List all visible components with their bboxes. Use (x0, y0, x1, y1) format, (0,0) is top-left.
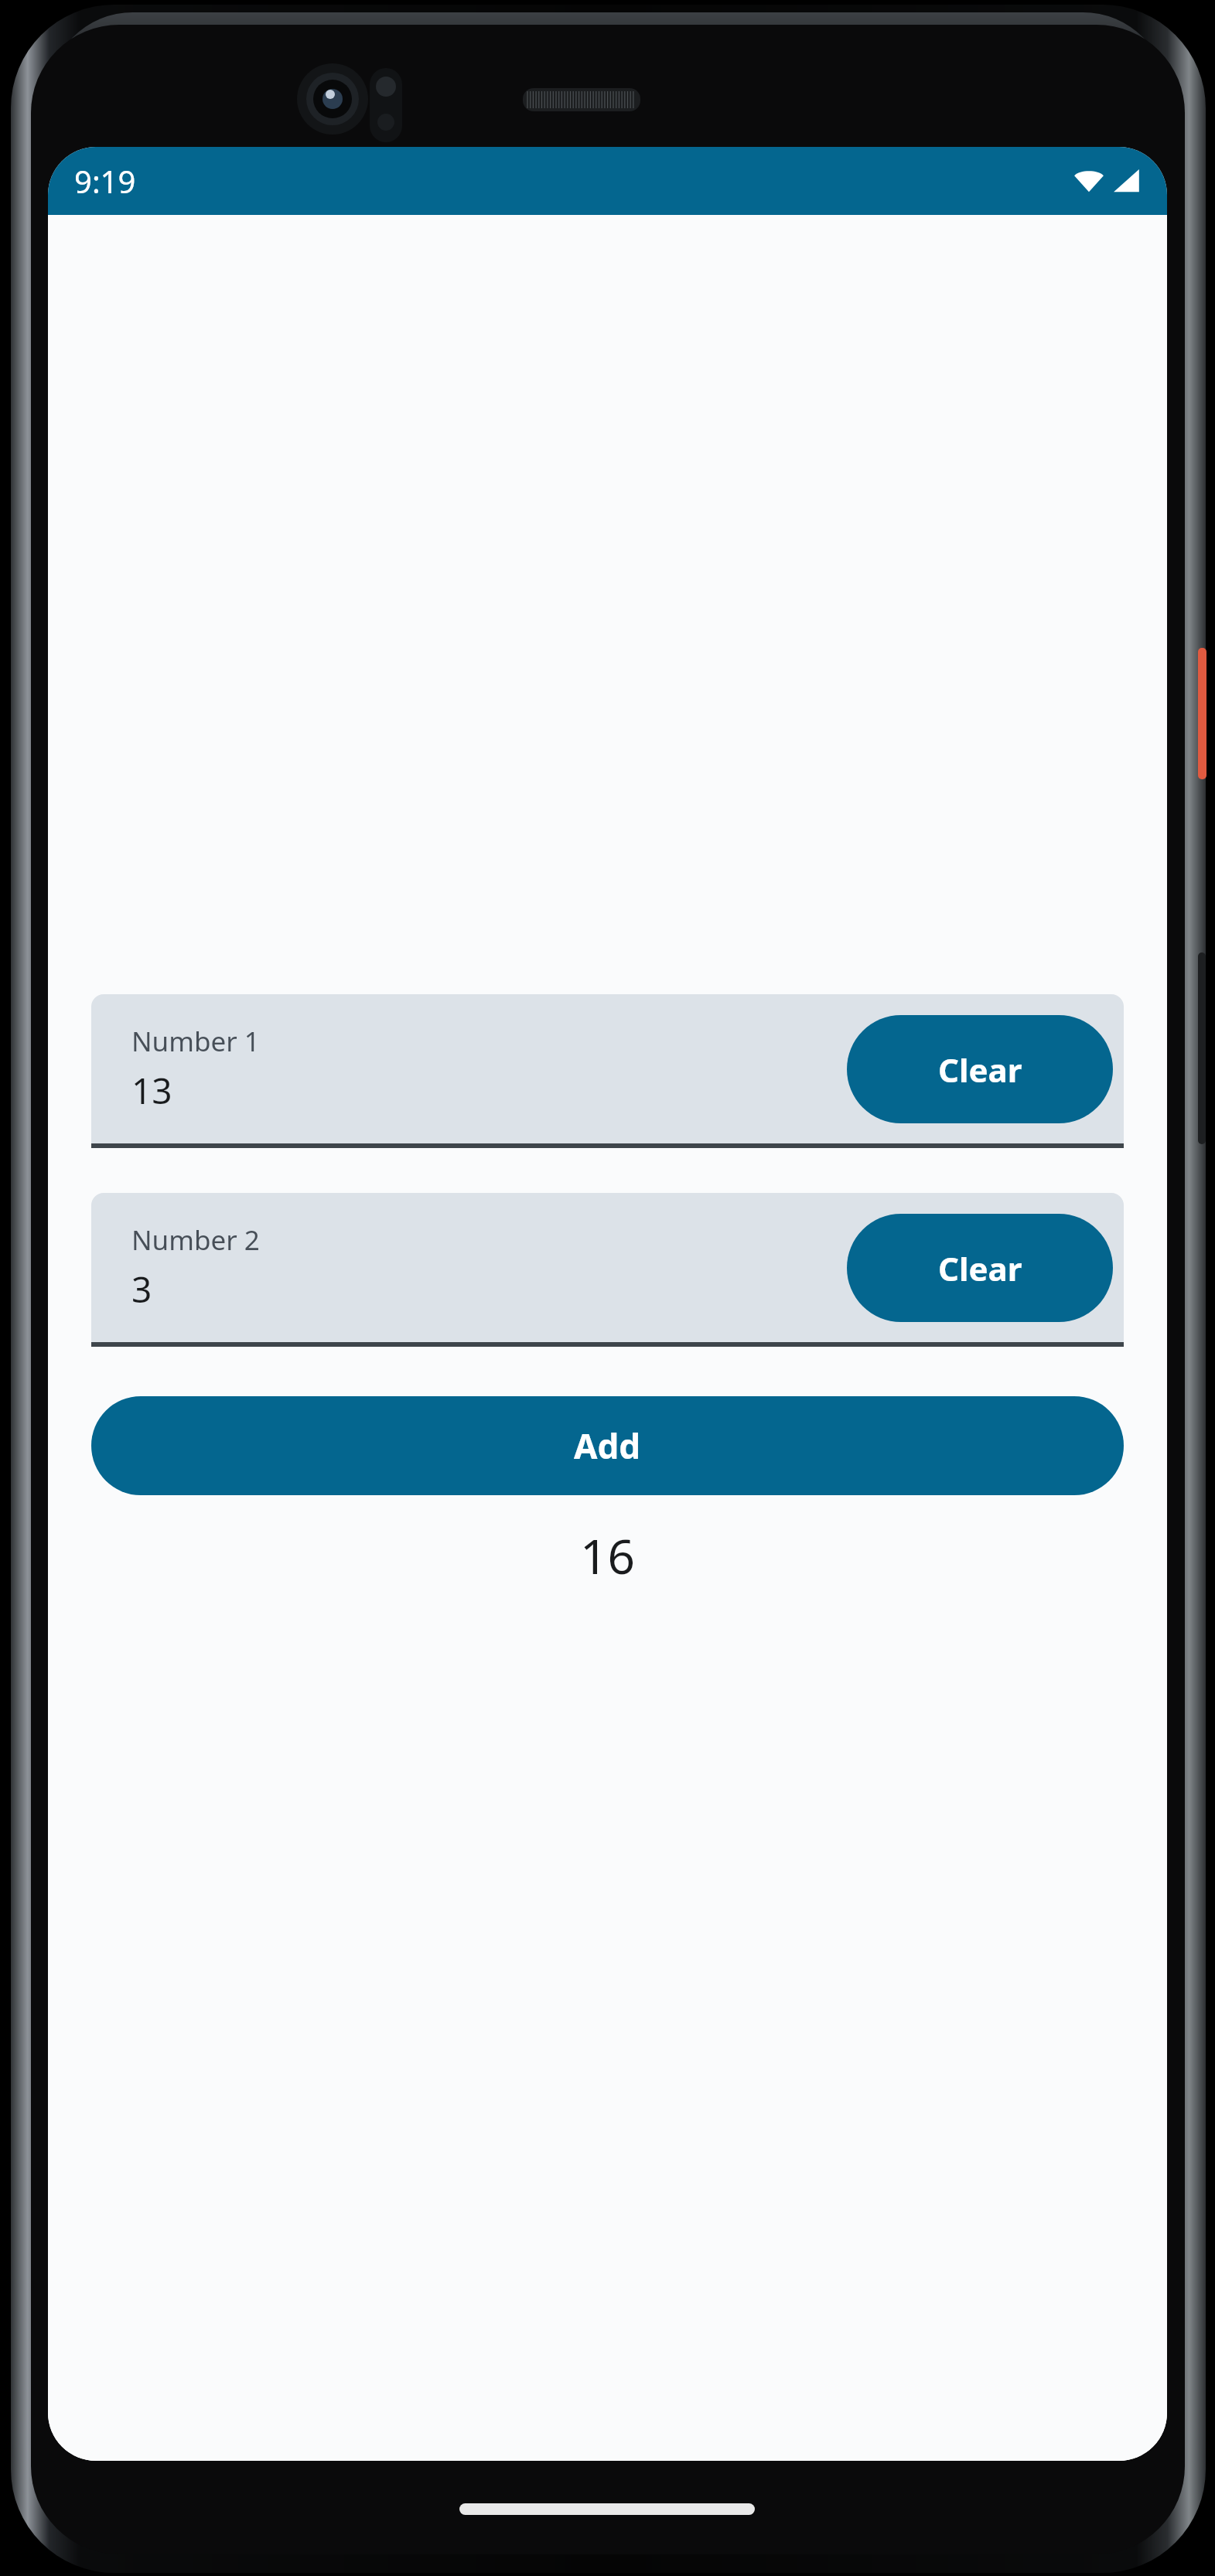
staticText: Clear (938, 1048, 1022, 1092)
staticText: Add (574, 1423, 641, 1469)
staticText: Number 1 (131, 1023, 260, 1060)
button[interactable]: Number 2 (91, 1193, 1124, 1342)
staticText: 16 (48, 1523, 1167, 1588)
staticText: 13 (131, 1066, 172, 1115)
button[interactable]: Add (91, 1396, 1124, 1495)
staticText: 9:19 (74, 160, 136, 202)
staticText: Number 2 (131, 1222, 260, 1259)
button[interactable]: Clear (847, 1015, 1113, 1123)
staticText: 3 (131, 1265, 152, 1314)
button[interactable]: Clear (847, 1214, 1113, 1322)
button[interactable]: Number 1 (91, 994, 1124, 1143)
staticText: Clear (938, 1246, 1022, 1290)
